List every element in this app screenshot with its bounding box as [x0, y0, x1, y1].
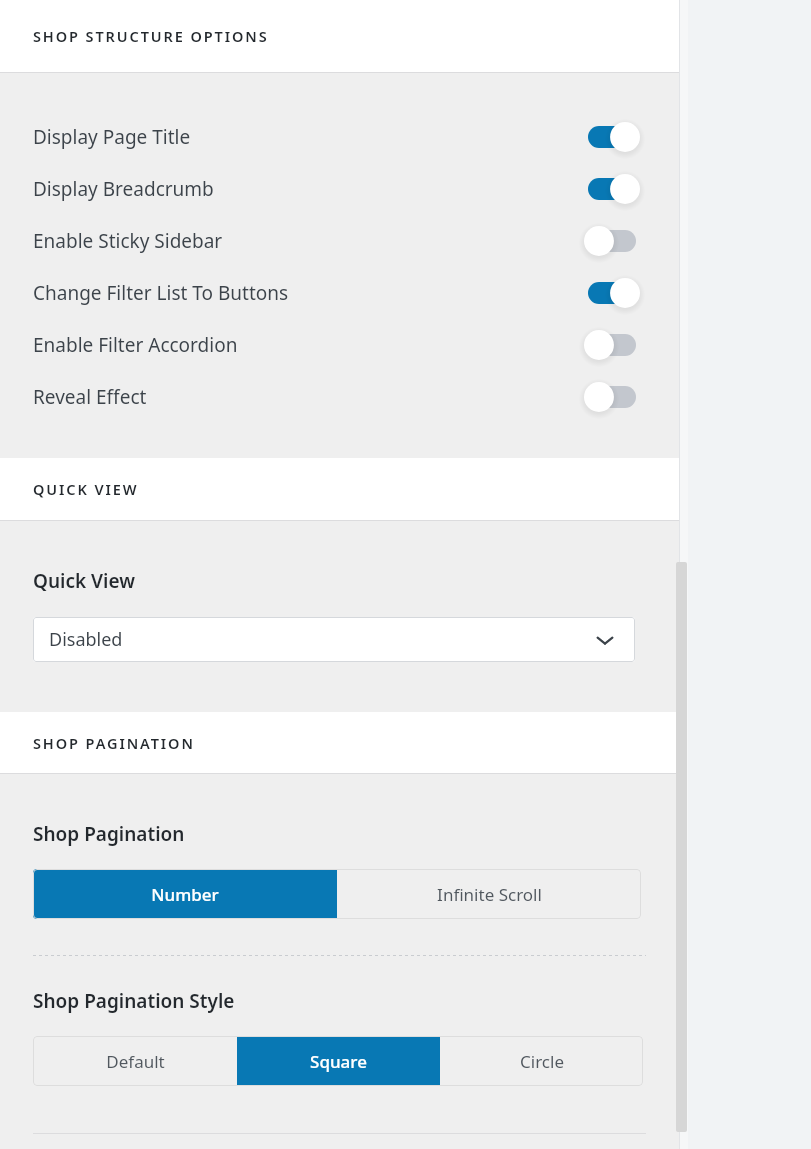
staticText: Enable Filter Accordion [33, 332, 583, 358]
button[interactable]: Display Breadcrumb [583, 172, 641, 206]
button[interactable]: Change Filter List To Buttons [0, 267, 679, 319]
button[interactable]: Enable Filter Accordion [583, 328, 641, 362]
button[interactable]: Enable Sticky Sidebar [583, 224, 641, 258]
staticText: Display Page Title [33, 124, 583, 150]
staticText: Square [310, 1050, 367, 1073]
staticText: QUICK VIEW [33, 479, 139, 499]
staticText: Circle [520, 1050, 564, 1073]
staticText: SHOP STRUCTURE OPTIONS [33, 26, 269, 46]
button[interactable]: Infinite Scroll [337, 869, 641, 919]
staticText: Number [151, 883, 219, 906]
button[interactable]: Disabled [33, 617, 635, 662]
button[interactable]: Change Filter List To Buttons [583, 276, 641, 310]
button[interactable]: Circle [440, 1036, 643, 1086]
button[interactable]: Enable Sticky Sidebar [0, 215, 679, 267]
button[interactable]: Number [33, 869, 337, 919]
staticText: Reveal Effect [33, 384, 583, 410]
button[interactable]: Reveal Effect [0, 371, 679, 423]
staticText: Default [106, 1050, 165, 1073]
staticText: Quick View [33, 568, 135, 594]
button[interactable]: Display Breadcrumb [0, 163, 679, 215]
staticText: SHOP PAGINATION [33, 733, 195, 753]
staticText: Display Breadcrumb [33, 176, 583, 202]
button[interactable]: Reveal Effect [583, 380, 641, 414]
staticText: Disabled [49, 627, 123, 652]
staticText: Enable Sticky Sidebar [33, 228, 583, 254]
button[interactable]: Default [33, 1036, 237, 1086]
staticText: Change Filter List To Buttons [33, 280, 583, 306]
button[interactable]: Square [237, 1036, 440, 1086]
button[interactable]: Display Page Title [0, 111, 679, 163]
button[interactable]: Enable Filter Accordion [0, 319, 679, 371]
button[interactable]: Display Page Title [583, 120, 641, 154]
staticText: Infinite Scroll [437, 883, 542, 906]
staticText: Shop Pagination Style [33, 988, 235, 1014]
staticText: Shop Pagination [33, 821, 185, 847]
